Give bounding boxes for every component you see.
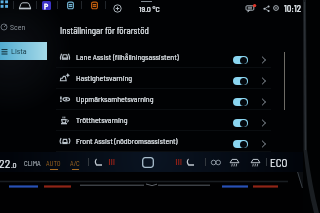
button[interactable]: Toggle Front Assist (nödbromsassistent) (233, 140, 248, 148)
button[interactable]: Toggle Lane Assist (filhållningsassisten… (233, 56, 248, 64)
button[interactable]: Warning (90, 1, 99, 10)
staticText: Hastighetsvarning (76, 73, 133, 83)
button[interactable]: ECO (270, 156, 288, 169)
button[interactable]: Climate (66, 1, 75, 10)
staticText: .0 (11, 160, 17, 170)
staticText: Front Assist (nödbromsassistent) (76, 136, 178, 146)
button[interactable]: Rear defrost (229, 157, 240, 168)
button[interactable]: Parking (42, 1, 51, 10)
button[interactable]: Connections (263, 5, 270, 12)
button[interactable]: Toggle Hastighetsvarning (233, 77, 248, 85)
staticText: Trötthetsvarning (76, 115, 128, 125)
staticText: A/C (70, 159, 80, 167)
staticText: 22 (0, 156, 11, 170)
button[interactable]: Lane Assist (filhållningsassistent) (56, 47, 271, 67)
button[interactable]: Open Hastighetsvarning (260, 77, 268, 85)
staticText: 19.0 °C (139, 4, 160, 14)
button[interactable]: Driver seat heating (93, 157, 104, 168)
staticText: Scen (10, 22, 26, 32)
button[interactable]: Toggle Trötthetsvarning (233, 119, 248, 127)
button[interactable]: Steering wheel heating (211, 158, 221, 168)
staticText: Inställningar för förarstöd (60, 25, 149, 36)
button[interactable]: Do not disturb (273, 5, 279, 11)
button[interactable]: Scen (0, 21, 48, 33)
button[interactable]: Home (142, 157, 154, 168)
button[interactable]: Add (113, 4, 122, 13)
button[interactable]: Trötthetsvarning (56, 110, 271, 130)
button[interactable]: CLIMA (24, 159, 41, 167)
button[interactable]: Vehicle (18, 0, 32, 14)
button[interactable]: Open Front Assist (nödbromsassistent) (260, 140, 268, 148)
staticText: Lane Assist (filhållningsassistent) (76, 52, 179, 62)
button[interactable]: Uppmärksamhetsvarning (56, 89, 271, 109)
button[interactable]: Front defrost (250, 157, 261, 168)
button[interactable]: 19.0 °C (138, 1, 162, 11)
button[interactable]: AUTO (46, 159, 61, 170)
button[interactable]: Open Uppmärksamhetsvarning (260, 98, 268, 106)
button[interactable]: Messages (246, 4, 256, 14)
button[interactable]: A/C (70, 159, 80, 170)
staticText: P (44, 1, 49, 10)
button[interactable]: Passenger seat heating (185, 157, 196, 168)
button[interactable]: Toggle Uppmärksamhetsvarning (233, 98, 248, 106)
button[interactable]: Hastighetsvarning (56, 68, 271, 88)
button[interactable]: Open Trötthetsvarning (260, 119, 268, 127)
button[interactable]: Front Assist (nödbromsassistent) (56, 131, 271, 151)
staticText: Lista (11, 46, 27, 56)
staticText: AUTO (46, 159, 61, 167)
button[interactable]: Open Lane Assist (filhållningsassistent) (260, 56, 268, 64)
button[interactable]: Lista (0, 42, 47, 60)
staticText: Uppmärksamhetsvarning (76, 94, 154, 104)
staticText: 10:12 (284, 3, 302, 14)
button[interactable]: 22 (0, 156, 17, 170)
button[interactable]: Apps (0, 0, 10, 10)
